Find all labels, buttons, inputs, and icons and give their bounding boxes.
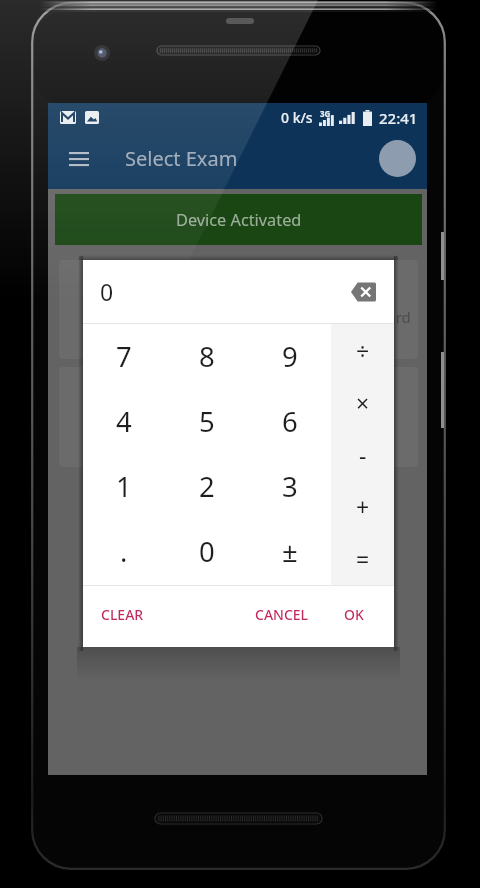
button[interactable]: = [331,532,394,584]
button[interactable]: CANCEL [245,596,319,633]
button[interactable] [59,367,418,467]
staticText: ± [282,533,298,570]
button[interactable]: 1 [83,454,165,519]
button[interactable]: . [83,519,165,584]
staticText: = [356,543,370,574]
staticText: 0 [199,533,215,570]
button[interactable]: CLEAR [91,596,154,633]
staticText: . [120,533,128,570]
staticText: Select Exam [125,145,238,172]
button[interactable]: 8 [165,324,248,389]
button[interactable]: 9 [248,324,331,389]
button[interactable]: ÷ [331,324,394,376]
button[interactable]: 5 [165,389,248,454]
staticText: 7 [116,338,132,375]
staticText: + [356,491,370,522]
staticText: × [356,387,370,418]
button[interactable]: 3 [248,454,331,519]
staticText: Device Activated [176,209,302,231]
button[interactable]: 7 [83,324,165,389]
button[interactable]: × [331,376,394,428]
button[interactable]: ± [248,519,331,584]
staticText: 5 [199,403,215,440]
button[interactable]: Device Activated [55,194,422,245]
staticText: 4 [116,403,132,440]
staticText: ÷ [356,335,370,366]
button[interactable]: Profile [379,140,416,177]
staticText: 1 [116,468,132,505]
button[interactable]: Open navigation menu [59,138,99,183]
staticText: 9 [282,338,298,375]
staticText: - [359,439,367,470]
button[interactable]: 2 [165,454,248,519]
button[interactable]: + [331,480,394,532]
staticText: 22:41 [379,108,418,128]
button[interactable]: 6 [248,389,331,454]
button[interactable]: 0 [165,519,248,584]
staticText: OK [344,605,364,624]
button[interactable]: Backspace [348,279,378,305]
staticText: 3 [282,468,298,505]
staticText: 6 [282,403,298,440]
staticText: CLEAR [101,605,144,624]
staticText: 0 [100,276,114,307]
staticText: 8 [199,338,215,375]
button[interactable]: - [331,428,394,480]
staticText: 3G [320,108,331,119]
button[interactable]: 4 [83,389,165,454]
staticText: Mathematics Exam Card [240,307,411,327]
button[interactable]: Mathematics Exam Card [59,260,418,359]
staticText: CANCEL [255,605,309,624]
staticText: 2 [199,468,215,505]
staticText: 0 k/s [281,108,313,127]
button[interactable]: OK [334,596,374,633]
